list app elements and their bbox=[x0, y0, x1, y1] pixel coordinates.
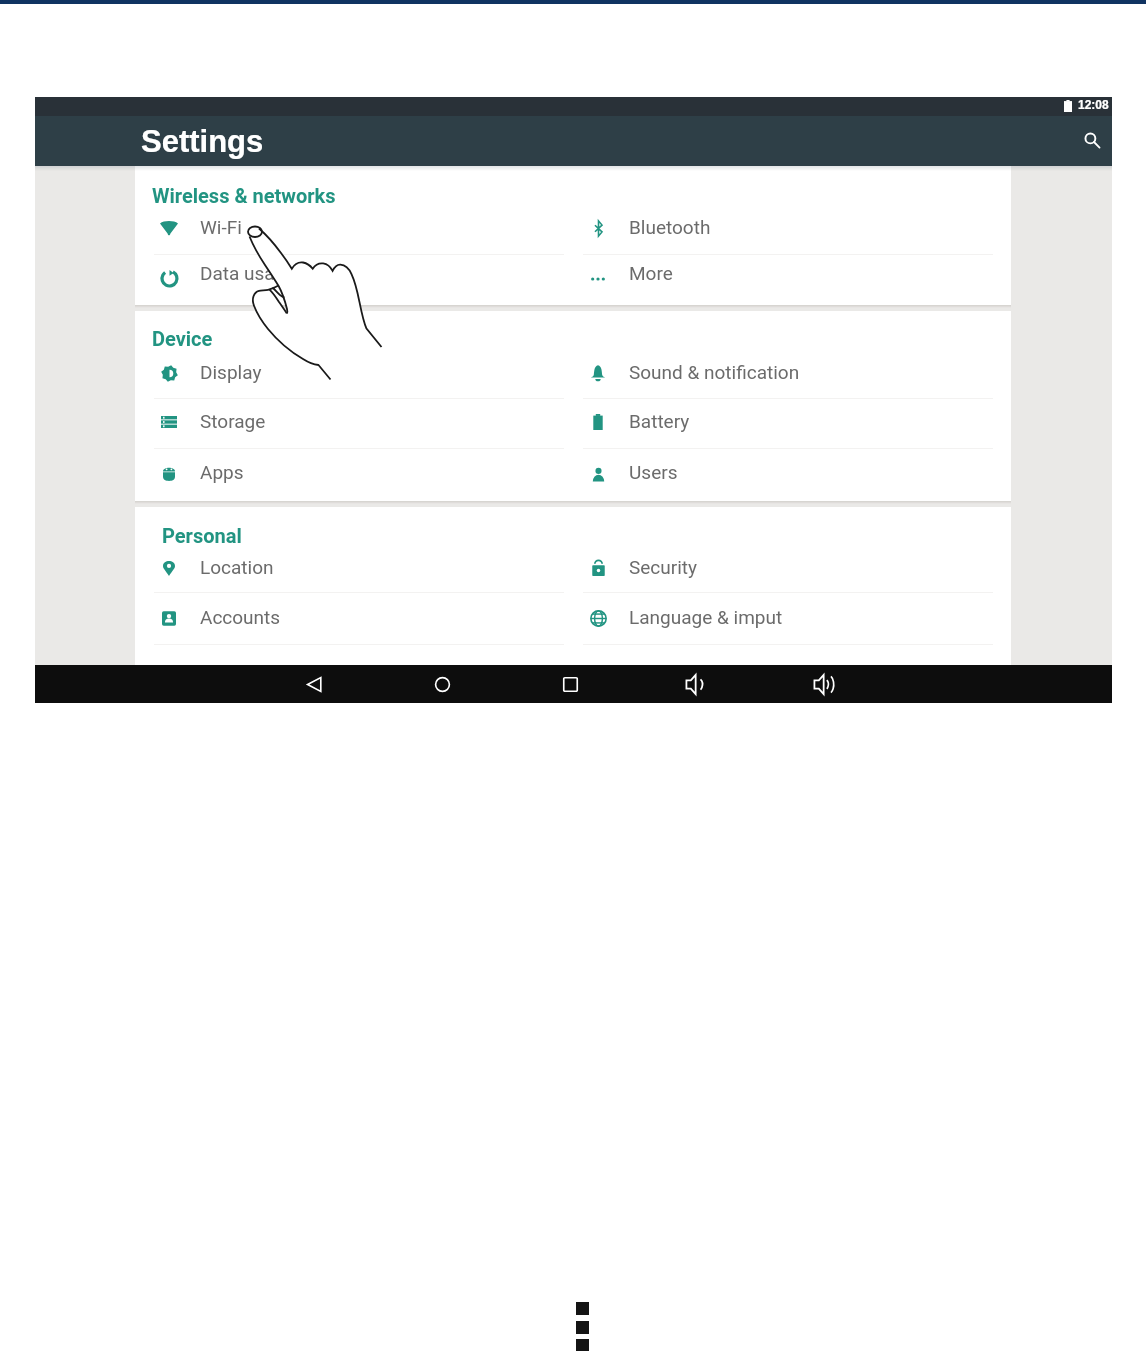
button[interactable]: Display bbox=[135, 350, 564, 396]
staticText: 12:08 bbox=[1078, 98, 1109, 111]
button[interactable]: Battery bbox=[564, 399, 993, 445]
button[interactable]: Recents bbox=[546, 665, 594, 703]
button[interactable]: Users bbox=[564, 450, 993, 496]
button[interactable]: Apps bbox=[135, 450, 564, 496]
staticText: Wi-Fi bbox=[200, 216, 242, 238]
staticText: Settings bbox=[141, 124, 264, 159]
button[interactable]: Search bbox=[1074, 122, 1110, 158]
button[interactable]: Home bbox=[418, 665, 466, 703]
staticText: Device bbox=[152, 327, 213, 350]
staticText: More bbox=[629, 262, 673, 284]
staticText: Users bbox=[629, 461, 678, 483]
button[interactable]: Bluetooth bbox=[564, 205, 993, 251]
button[interactable]: Language & imput bbox=[564, 595, 993, 641]
button[interactable]: More bbox=[564, 251, 993, 297]
staticText: Sound & notification bbox=[629, 361, 800, 383]
staticText: Data usage bbox=[200, 262, 296, 284]
button[interactable]: Back bbox=[290, 665, 338, 703]
button[interactable]: Location bbox=[135, 545, 564, 591]
staticText: Security bbox=[629, 556, 698, 578]
staticText: Display bbox=[200, 361, 262, 383]
button[interactable]: Wi-Fi bbox=[135, 205, 564, 251]
button[interactable]: Volume up bbox=[800, 665, 848, 703]
button[interactable]: Accounts bbox=[135, 595, 564, 641]
button[interactable]: Sound & notification bbox=[564, 350, 993, 396]
button[interactable]: Security bbox=[564, 545, 993, 591]
staticText: Location bbox=[200, 556, 274, 578]
button[interactable]: Data usage bbox=[135, 251, 564, 297]
staticText: Language & imput bbox=[629, 606, 783, 628]
staticText: Personal bbox=[162, 524, 242, 547]
staticText: Bluetooth bbox=[629, 216, 711, 238]
button[interactable]: Storage bbox=[135, 399, 564, 445]
staticText: Apps bbox=[200, 461, 244, 483]
staticText: Accounts bbox=[200, 606, 281, 628]
staticText: Wireless & networks bbox=[152, 184, 336, 207]
staticText: Battery bbox=[629, 410, 690, 432]
button[interactable]: Volume down bbox=[672, 665, 720, 703]
staticText: Storage bbox=[200, 410, 266, 432]
